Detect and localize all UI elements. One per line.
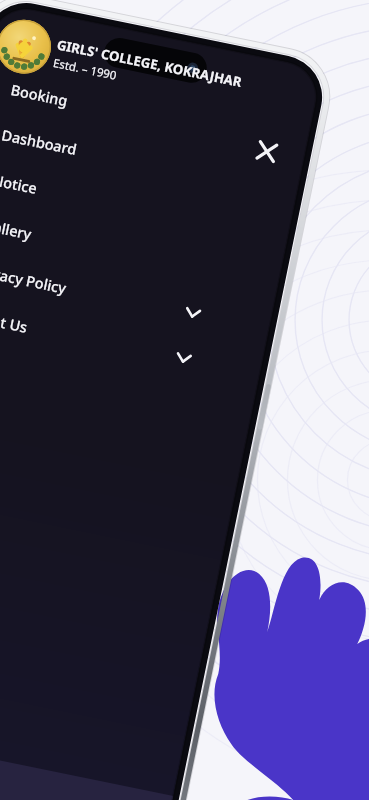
button[interactable]: Navigation drawer mockup [0,0,369,800]
